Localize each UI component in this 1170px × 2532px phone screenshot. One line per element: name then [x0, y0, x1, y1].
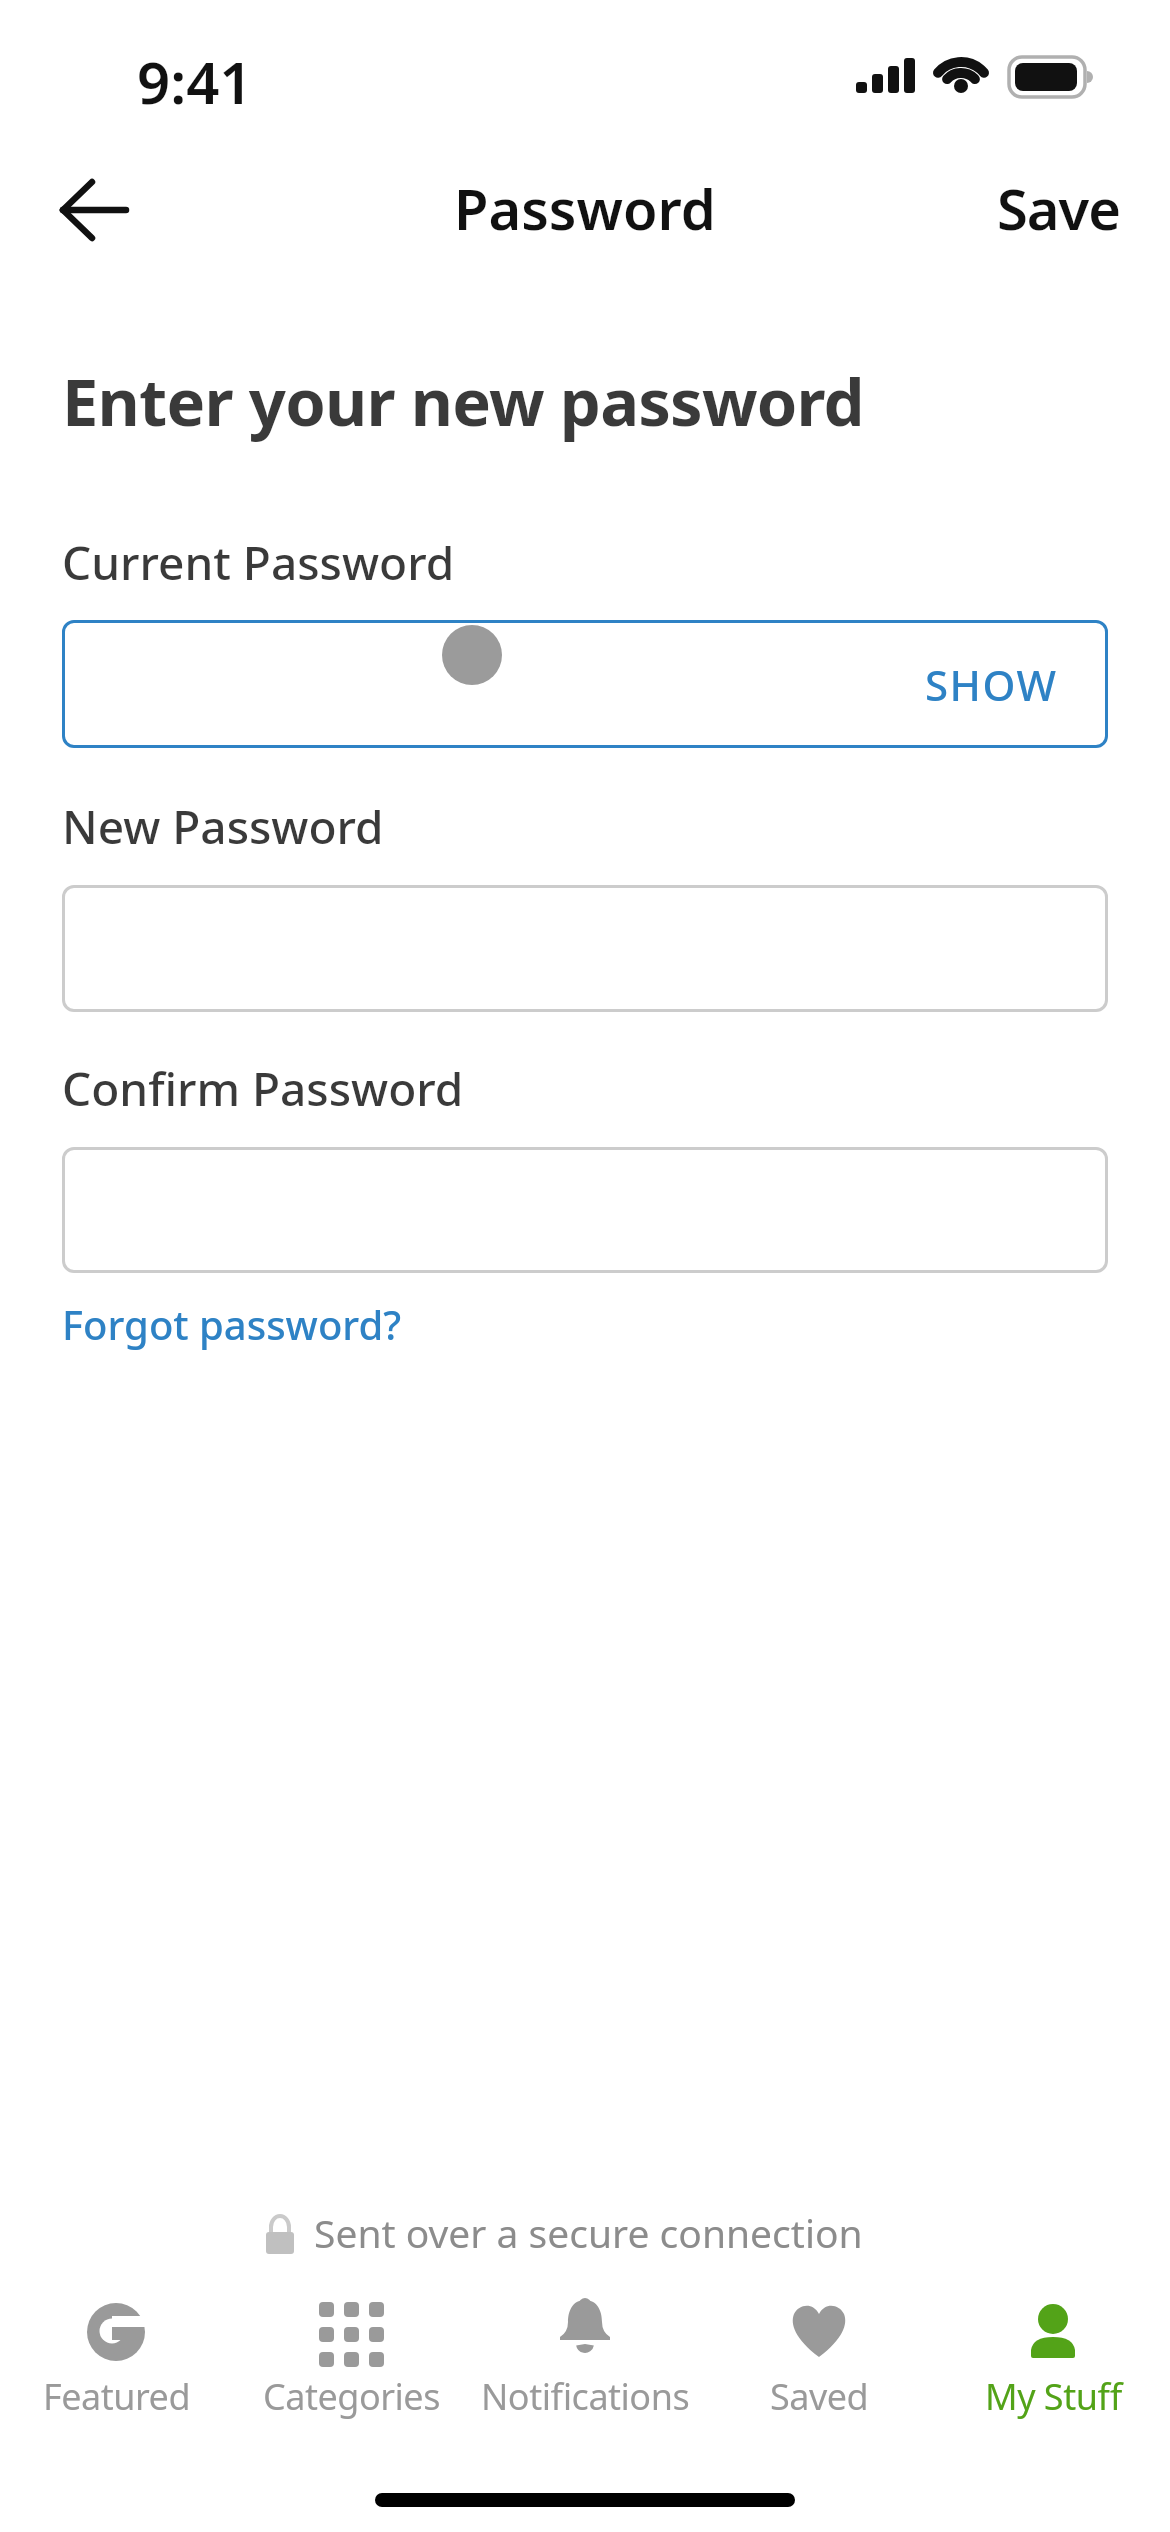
staticText: Notifications [481, 2372, 690, 2421]
button[interactable] [45, 165, 145, 255]
button[interactable]: Save [940, 170, 1120, 246]
button[interactable]: Featured [0, 2292, 234, 2428]
staticText: Save [997, 170, 1120, 246]
staticText: 9:41 [137, 42, 253, 116]
staticText: Enter your new password [62, 357, 864, 446]
button[interactable]: My Stuff [936, 2292, 1170, 2428]
button[interactable]: Categories [234, 2292, 468, 2428]
button[interactable] [62, 885, 1108, 1012]
staticText: Sent over a secure connection [314, 2206, 863, 2259]
staticText: Forgot password? [62, 1297, 402, 1351]
button[interactable]: Forgot password? [62, 1297, 402, 1351]
button[interactable] [62, 1147, 1108, 1273]
staticText: Current Password [62, 531, 455, 594]
staticText: Categories [263, 2372, 440, 2421]
button[interactable]: Notifications [468, 2292, 702, 2428]
button[interactable]: Saved [702, 2292, 936, 2428]
button[interactable]: SHOW [62, 620, 1108, 748]
staticText: Saved [770, 2372, 869, 2421]
staticText: Confirm Password [62, 1057, 464, 1120]
staticText: SHOW [925, 656, 1058, 713]
staticText: My Stuff [985, 2372, 1122, 2421]
staticText: Password [454, 170, 716, 246]
staticText: Featured [43, 2372, 191, 2421]
button[interactable]: SHOW [62, 620, 1058, 748]
staticText: New Password [62, 795, 384, 858]
